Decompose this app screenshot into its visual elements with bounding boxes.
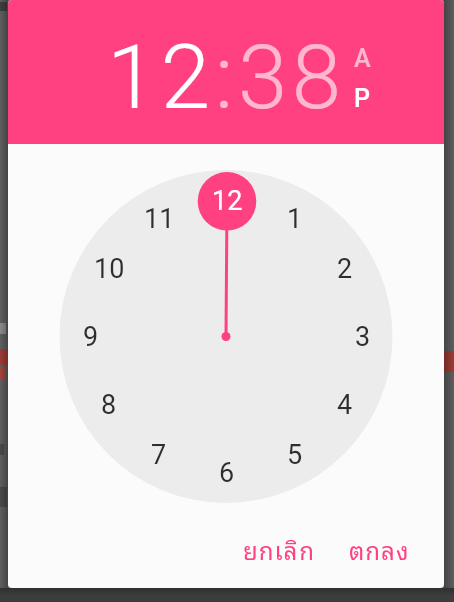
staticText: A xyxy=(354,44,371,73)
staticText: 12 xyxy=(212,185,243,217)
staticText: 2 xyxy=(337,253,353,285)
button[interactable]: A xyxy=(0,0,40,30)
staticText: 6 xyxy=(219,457,235,489)
staticText: ยกเลิก xyxy=(243,530,316,568)
staticText: 4 xyxy=(337,389,353,421)
staticText: 9 xyxy=(83,321,99,353)
staticText: 12:38 xyxy=(107,25,346,129)
button[interactable]: P xyxy=(0,0,40,30)
staticText: 8 xyxy=(101,389,117,421)
staticText: 7 xyxy=(151,439,167,471)
staticText: 5 xyxy=(287,439,303,471)
staticText: 10 xyxy=(94,253,125,285)
staticText: 3 xyxy=(355,321,371,353)
staticText: P xyxy=(354,84,370,113)
staticText: ตกลง xyxy=(349,530,410,568)
staticText: 1 xyxy=(287,203,303,235)
staticText: 11 xyxy=(144,203,175,235)
button[interactable]: ตกลง xyxy=(334,527,424,571)
button[interactable]: ยกเลิก xyxy=(233,527,325,571)
